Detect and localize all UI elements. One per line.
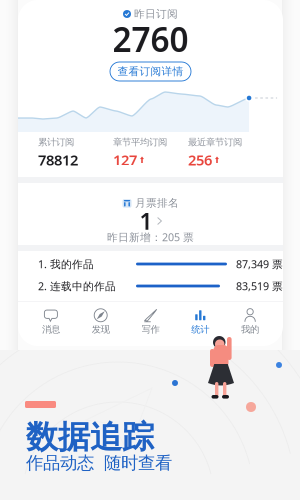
staticText: 写作 bbox=[141, 324, 159, 335]
staticText: 消息 bbox=[42, 324, 60, 335]
staticText: 查看订阅详情 bbox=[117, 65, 183, 78]
button[interactable]: 发现 bbox=[76, 306, 126, 338]
staticText: 127 bbox=[113, 150, 137, 169]
staticText: 昨日新增：205 票 bbox=[107, 230, 194, 244]
staticText: 月票排名 bbox=[135, 196, 179, 209]
staticText: 作品动态 随时查看 bbox=[26, 452, 172, 474]
staticText: 83,519 票 bbox=[236, 279, 283, 293]
staticText: 256 bbox=[188, 150, 212, 169]
button[interactable]: 1 bbox=[140, 212, 161, 230]
staticText: 2. 连载中的作品 bbox=[38, 279, 116, 293]
staticText: 累计订阅 bbox=[38, 136, 74, 148]
button[interactable]: 统计 bbox=[175, 306, 225, 338]
staticText: 78812 bbox=[38, 150, 78, 169]
button[interactable]: 我的 bbox=[225, 306, 275, 338]
staticText: 章节平均订阅 bbox=[113, 136, 167, 148]
staticText: 2760 bbox=[112, 17, 188, 61]
staticText: 昨日订阅 bbox=[134, 7, 178, 20]
staticText: 数据追踪 bbox=[26, 417, 154, 457]
button[interactable]: 消息 bbox=[26, 306, 76, 338]
staticText: 最近章节订阅 bbox=[188, 136, 242, 148]
staticText: 1 bbox=[140, 206, 153, 236]
staticText: 87,349 票 bbox=[236, 257, 283, 271]
button[interactable]: 1. 我的作品 bbox=[38, 253, 283, 275]
staticText: 发现 bbox=[92, 324, 110, 335]
button[interactable]: 2. 连载中的作品 bbox=[38, 275, 283, 297]
button[interactable]: 写作 bbox=[126, 306, 175, 338]
staticText: 1. 我的作品 bbox=[38, 257, 94, 271]
staticText: 我的 bbox=[241, 324, 259, 335]
staticText: 统计 bbox=[191, 324, 209, 335]
button[interactable]: 查看订阅详情 bbox=[110, 62, 191, 81]
